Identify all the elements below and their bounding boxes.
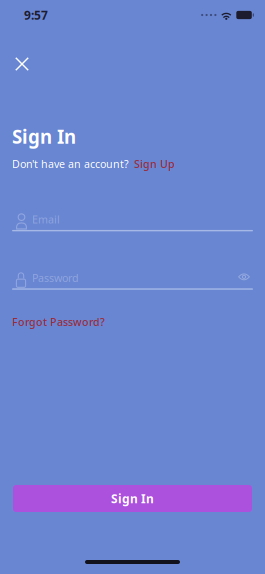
staticText: Forgot Password? <box>12 315 105 329</box>
staticText: Sign In <box>12 124 76 149</box>
staticText: Sign Up <box>134 157 175 171</box>
button[interactable]: Sign In <box>13 485 252 512</box>
staticText: Email <box>32 212 60 227</box>
staticText: Sign In <box>111 490 154 506</box>
button[interactable]: Sign Up <box>134 157 175 171</box>
button[interactable]: Forgot Password? <box>12 315 105 329</box>
button[interactable]: Close <box>5 47 39 81</box>
staticText: Don't have an account? <box>12 157 129 171</box>
staticText: Password <box>32 271 79 285</box>
button[interactable]: Show password <box>238 272 250 282</box>
staticText: 9:57 <box>24 7 48 23</box>
